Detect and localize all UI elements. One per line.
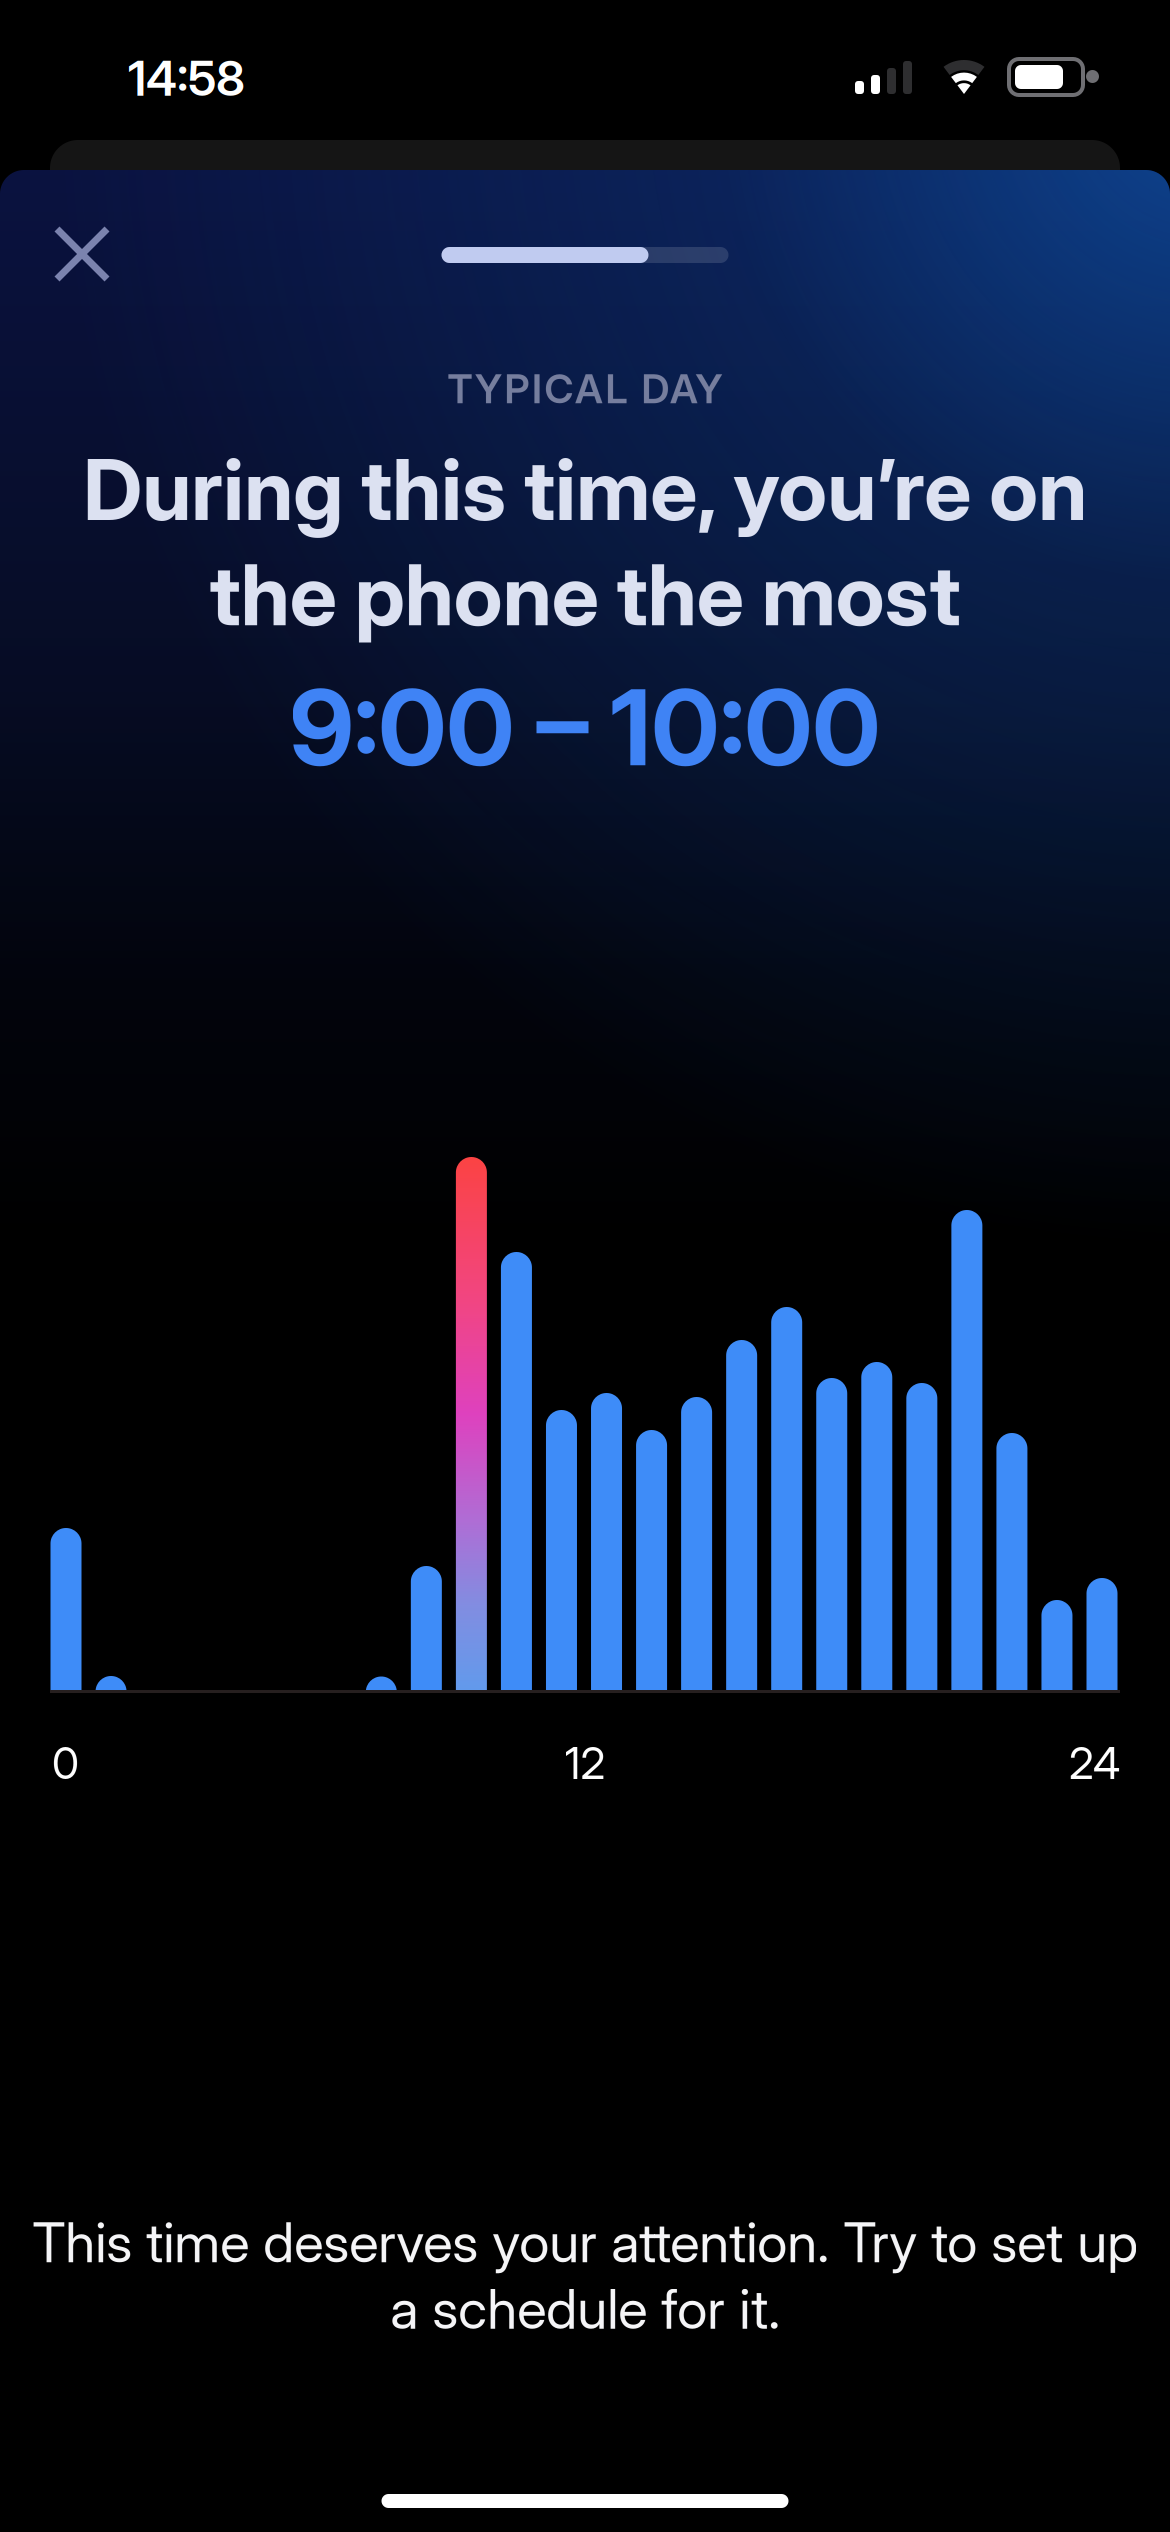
staticText: During this time, you’re on the phone th… [83,440,1087,644]
staticText: This time deserves your attention. Try t… [32,2210,1138,2341]
staticText: 9:00 – 10:00 [289,666,880,789]
button[interactable]: Close [0,170,107,279]
staticText: 24 [1069,1737,1120,1789]
staticText: 0 [52,1737,79,1789]
staticText: 12 [564,1737,605,1789]
staticText: 14:58 [128,50,245,107]
staticText: TYPICAL DAY [447,365,722,412]
